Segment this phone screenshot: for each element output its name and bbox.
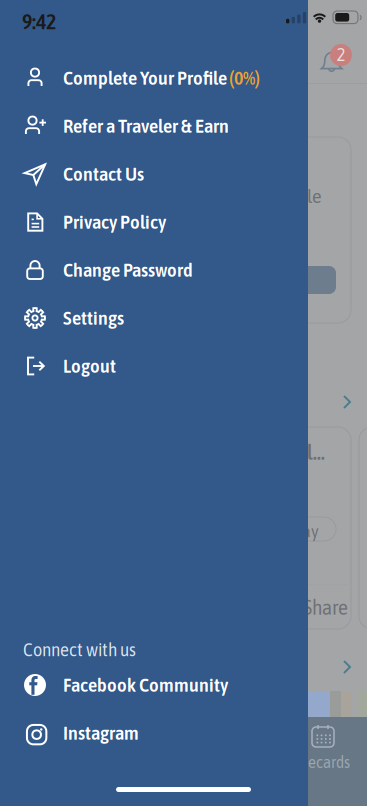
button[interactable]: Instagram [0,709,308,757]
staticText: 2 [336,44,345,65]
staticText: Homecards [278,753,350,771]
staticText: Logout [63,355,116,377]
staticText: le [307,185,322,207]
staticText: Privacy Policy [63,211,166,233]
staticText: (0%) [229,67,260,89]
button[interactable]: Change Password [0,246,308,294]
staticText: Facebook Community [63,674,228,696]
button[interactable]: Settings [0,294,308,342]
staticText: Contact Us [63,163,144,185]
staticText: Settings [63,307,124,329]
button[interactable]: Privacy Policy [0,198,308,246]
staticText: Instagram [63,722,139,744]
staticText: Share [303,596,348,619]
staticText: Complete Your Profile [63,67,227,89]
staticText: l... [307,441,325,464]
staticText: ay [302,521,319,541]
staticText: Change Password [63,259,193,281]
staticText: Connect with us [23,639,136,660]
staticText: Refer a Traveler & Earn [63,115,229,137]
button[interactable]: Logout [0,342,308,390]
button[interactable]: Refer a Traveler & Earn [0,102,308,150]
button[interactable]: Complete Your Profile [0,54,308,102]
staticText: 9:42 [22,10,56,34]
button[interactable]: Contact Us [0,150,308,198]
button[interactable]: Facebook Community [0,661,308,709]
